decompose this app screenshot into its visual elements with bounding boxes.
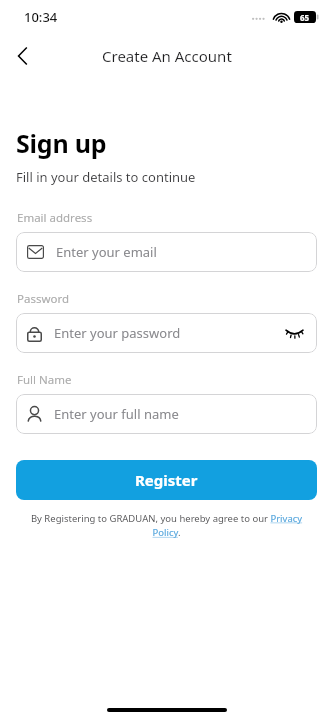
staticText: Email address (17, 210, 93, 226)
button[interactable]: Full name field (16, 394, 317, 434)
staticText: Enter your password (54, 324, 282, 342)
staticText: Enter your email (56, 243, 306, 261)
button[interactable]: Register (16, 460, 317, 500)
button[interactable]: Back (0, 34, 44, 78)
button[interactable]: Show password (282, 321, 306, 345)
staticText: Full Name (17, 372, 72, 388)
staticText: Register (135, 470, 198, 490)
staticText: Fill in your details to continue (16, 168, 196, 186)
button[interactable]: Email address field (16, 232, 317, 272)
staticText: Enter your full name (54, 405, 306, 423)
staticText: By Registering to GRADUAN, you hereby ag… (20, 512, 313, 539)
staticText: 10:34 (24, 8, 58, 26)
staticText: Password (17, 291, 70, 307)
button[interactable]: Password field (16, 313, 317, 353)
staticText: Create An Account (102, 46, 232, 66)
staticText: 65 (300, 12, 310, 23)
button[interactable]: By Registering to GRADUAN, you hereby ag… (20, 512, 313, 539)
staticText: Sign up (16, 126, 107, 160)
